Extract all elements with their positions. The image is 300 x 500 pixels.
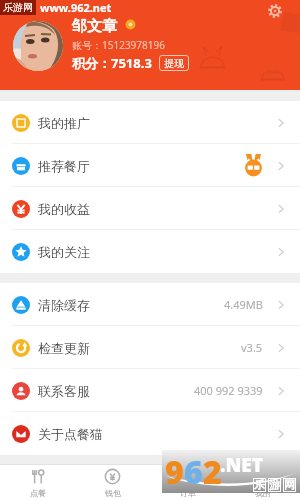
button[interactable]: 我的收益 (0, 187, 300, 230)
staticText: 积分：7518.3 (72, 54, 152, 72)
staticText: 清除缓存 (38, 297, 90, 313)
button[interactable]: 清除缓存 (0, 283, 300, 326)
button[interactable]: 订单 (150, 465, 225, 500)
staticText: 我的 (255, 488, 271, 498)
staticText: 关于点餐猫 (38, 426, 103, 442)
staticText: 联系客服 (38, 383, 90, 399)
staticText: www.962.net (40, 0, 112, 15)
staticText: 账号：15123978196 (72, 38, 165, 52)
staticText: .NET (220, 452, 263, 478)
button[interactable]: 联系客服 (0, 369, 300, 412)
button[interactable]: 关于点餐猫 (0, 412, 300, 455)
staticText: 我的关注 (38, 244, 90, 260)
button[interactable]: 推荐餐厅 (0, 144, 300, 187)
staticText: 提现 (164, 57, 184, 70)
staticText: 乐游网 (3, 1, 33, 14)
staticText: v3.5 (241, 340, 263, 355)
button[interactable]: 点餐 (0, 465, 75, 500)
button[interactable]: Avatar (13, 21, 63, 71)
staticText: 订单 (180, 488, 196, 498)
button[interactable]: 检查更新 (0, 326, 300, 369)
staticText: 点餐 (30, 488, 46, 498)
staticText: 4.49MB (224, 297, 263, 312)
button[interactable]: 提现 (159, 55, 189, 71)
button[interactable]: Settings (268, 4, 282, 18)
staticText: 6 (184, 450, 203, 493)
staticText: 400 992 9339 (194, 383, 263, 398)
staticText: 我的收益 (38, 201, 90, 217)
staticText: 检查更新 (38, 340, 90, 356)
staticText: 网 (284, 478, 295, 492)
staticText: 乐 (254, 478, 265, 492)
button[interactable]: 钱包 (75, 465, 150, 500)
staticText: 钱包 (105, 488, 121, 498)
staticText: 邹文章 (72, 17, 117, 36)
button[interactable]: 我的关注 (0, 230, 300, 273)
staticText: 我的推广 (38, 115, 90, 131)
button[interactable]: 我的 (225, 465, 300, 500)
staticText: 游 (269, 478, 280, 492)
staticText: 2 (203, 450, 222, 493)
staticText: 9 (165, 450, 184, 493)
button[interactable]: 我的推广 (0, 101, 300, 144)
staticText: 推荐餐厅 (38, 158, 90, 174)
